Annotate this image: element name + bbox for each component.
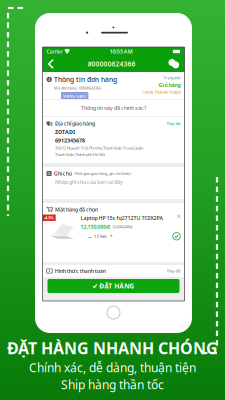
button[interactable]: ĐẶT HÀNG [47,279,179,293]
staticText: -4.3% [44,215,54,220]
staticText: Nhập ghi chú của bạn tại đây [55,178,123,186]
staticText: Trạng thái [163,75,180,80]
staticText: Ship hàng thần tốc [61,377,164,392]
staticText: 1 Chiếc [94,234,107,239]
staticText: Ghi chú [54,170,72,177]
staticText: Thông tin đơn hàng [54,75,117,84]
staticText: Laptop HP 15s fq2712TU 7C0X2PA [80,214,162,222]
staticText: Carrier [46,48,62,55]
staticText: + [110,233,113,240]
staticText: (Thời gian giao hàng, ghi chú khác) [74,171,131,176]
button[interactable]: Thay đổi [166,121,180,126]
staticText: Thay đổi [166,121,180,126]
staticText: ĐANG GIAO [63,93,86,99]
staticText: – [88,232,91,241]
button[interactable]: Remove item [177,214,180,218]
button[interactable]: Messages [164,56,183,72]
staticText: Hình thức thanh toán [55,267,106,275]
staticText: Giỏ hàng [158,81,180,88]
staticText: #00000624366 [87,60,135,68]
staticText: Mặt hàng đã chọn [55,206,98,213]
staticText: 336/12 Nguyễn Trãi,Phường Thanh Xuân Tru… [55,145,143,151]
button[interactable]: Back [43,56,58,72]
staticText: Thông tin này đã chính xác? [81,104,146,112]
staticText: ZOTADI [55,128,75,136]
staticText: ĐẶT HÀNG NHANH CHÓNG [7,337,218,359]
button[interactable]: Increase quantity [109,233,114,240]
staticText: 12.150.000đ [80,223,109,230]
staticText: 10:53 AM [110,48,133,55]
staticText: 12.690.000đ [112,224,132,229]
staticText: Thay đổi [166,268,180,274]
staticText: ĐẶT HÀNG [99,282,134,290]
button[interactable]: Decrease quantity [87,232,92,241]
staticText: Mã đơn hàng : 00000624366 [54,85,101,91]
staticText: 6912345678 [55,137,85,144]
staticText: CHƯA THANH TOÁN [141,90,180,95]
staticText: Địa chỉ giao hàng [55,120,95,127]
staticText: Chính xác, dễ dàng, thuận tiện [29,360,196,376]
button[interactable]: Thay đổi [166,268,180,274]
staticText: Thanh Xuân,Thành phố Hà Nội [55,152,105,157]
